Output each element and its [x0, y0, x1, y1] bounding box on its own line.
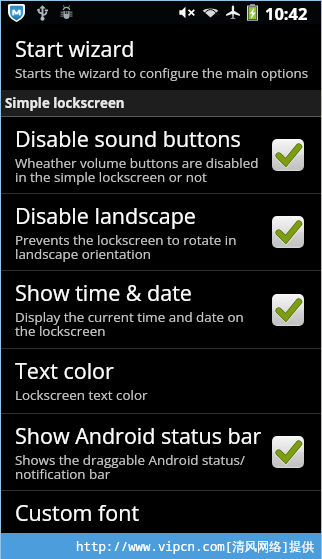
staticText: Disable sound buttons	[15, 124, 241, 153]
button[interactable]: Disable sound buttons	[1, 117, 321, 193]
staticText: Start wizard	[15, 34, 135, 63]
button[interactable]: Text color	[1, 349, 321, 413]
button[interactable]: Show Android status bar	[1, 414, 321, 490]
staticText: Text color	[15, 356, 114, 385]
staticText: Custom font	[15, 498, 140, 527]
staticText: Starts the wizard to configure the main …	[15, 64, 309, 82]
button[interactable]: Custom font	[1, 491, 321, 533]
staticText: Show time & date	[15, 278, 192, 307]
staticText: Wheather volume buttons are disabled in …	[15, 154, 266, 186]
staticText: Prevents the lockscreen to rotate in lan…	[15, 231, 266, 263]
staticText: Disable landscape	[15, 201, 196, 230]
staticText: Shows the draggable Android status/ noti…	[15, 451, 266, 483]
button[interactable]: Disable landscape	[1, 194, 321, 270]
staticText: Show Android status bar	[15, 421, 262, 450]
staticText: Simple lockscreen	[5, 94, 125, 112]
staticText: Display the current time and date on the…	[15, 308, 266, 340]
staticText: http://www.vipcn.com[清风网络]提供	[76, 538, 314, 555]
button[interactable]: Start wizard	[1, 24, 321, 90]
staticText: 10:42	[265, 2, 308, 24]
staticText: Lockscreen text color	[15, 386, 148, 404]
button[interactable]: Show time & date	[1, 271, 321, 348]
